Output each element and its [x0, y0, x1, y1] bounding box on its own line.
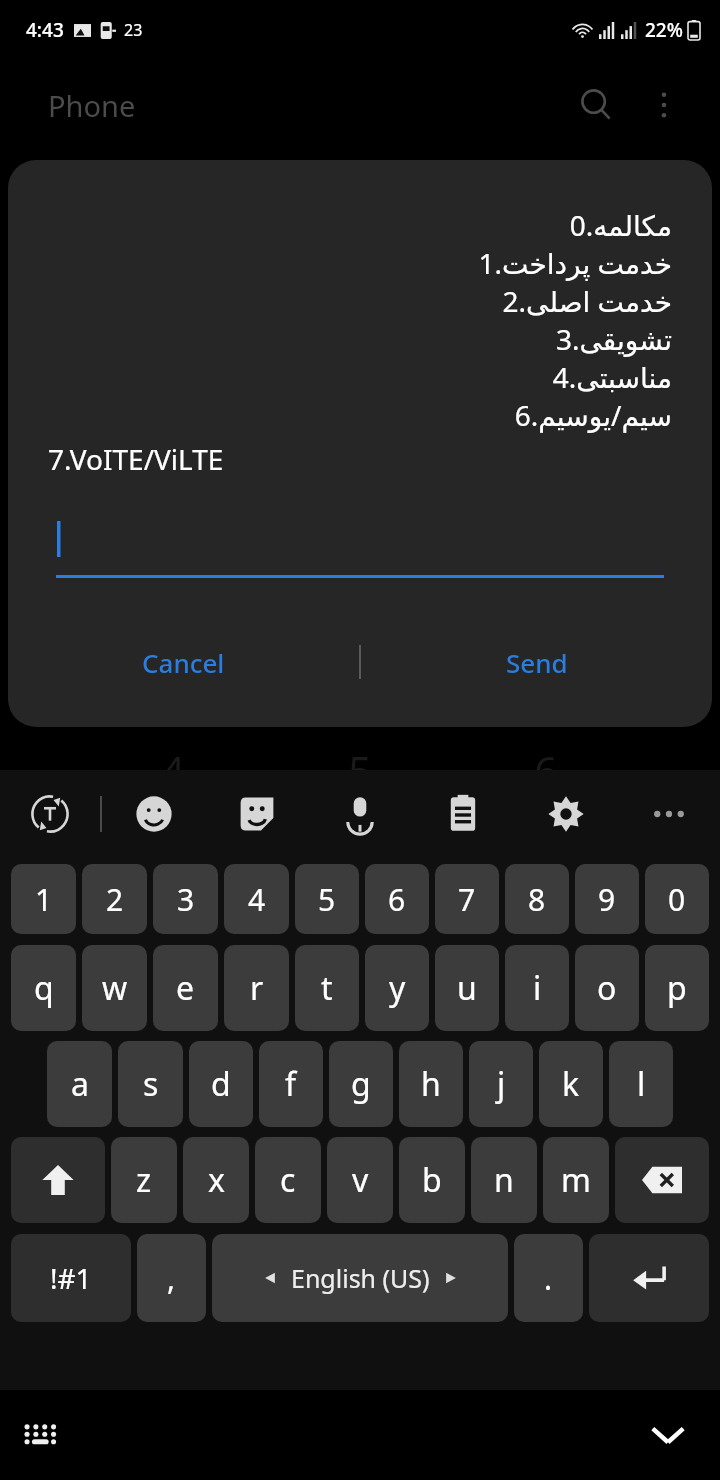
staticText: 6 [388, 879, 406, 920]
button[interactable]: y [365, 945, 429, 1031]
button[interactable]: More options [636, 77, 692, 133]
staticText: m [561, 1158, 591, 1202]
staticText: e [176, 966, 195, 1010]
staticText: 4 [161, 742, 186, 799]
button[interactable]: 8 [505, 864, 569, 934]
button[interactable]: Stickers [205, 770, 308, 858]
staticText: , [167, 1258, 176, 1299]
button[interactable]: !#1 [11, 1234, 131, 1322]
button[interactable]: u [435, 945, 499, 1031]
staticText: y [389, 966, 406, 1010]
staticText: 0 [668, 879, 686, 920]
button[interactable]: a [47, 1041, 112, 1127]
staticText: 3 [177, 879, 195, 920]
staticText: 6.سیم/یوسیم [8, 396, 672, 434]
button[interactable]: x [183, 1137, 249, 1223]
button[interactable]: Backspace [615, 1137, 709, 1223]
staticText: g [351, 1062, 371, 1106]
button[interactable]: 3 [153, 864, 218, 934]
button[interactable]: g [329, 1041, 393, 1127]
staticText: 2 [106, 879, 124, 920]
button[interactable]: Enter [589, 1234, 709, 1322]
staticText: o [597, 966, 617, 1010]
button[interactable]: v [327, 1137, 393, 1223]
staticText: c [280, 1158, 296, 1202]
staticText: u [457, 966, 477, 1010]
button[interactable]: m [543, 1137, 609, 1223]
staticText: 23 [124, 19, 143, 41]
staticText: i [533, 966, 542, 1010]
staticText: Phone [48, 86, 136, 125]
staticText: b [422, 1158, 442, 1202]
button[interactable]: 1 [11, 864, 76, 934]
button[interactable]: k [539, 1041, 603, 1127]
button[interactable]: h [399, 1041, 463, 1127]
staticText: 7 [458, 879, 476, 920]
button[interactable]: Clipboard [411, 770, 514, 858]
button[interactable] [56, 518, 664, 578]
staticText: 8 [528, 879, 546, 920]
staticText: v [352, 1158, 369, 1202]
button[interactable]: Search [568, 77, 624, 133]
staticText: t [321, 966, 333, 1010]
button[interactable]: p [645, 945, 709, 1031]
button[interactable]: q [11, 945, 76, 1031]
button[interactable]: l [609, 1041, 673, 1127]
staticText: 7.VoITE/ViLTE [48, 440, 712, 478]
button[interactable]: . [514, 1234, 583, 1322]
button[interactable]: Cancel [8, 630, 359, 694]
button[interactable]: Translate [0, 770, 100, 858]
button[interactable]: t [295, 945, 359, 1031]
staticText: p [667, 966, 687, 1010]
button[interactable]: z [111, 1137, 177, 1223]
button[interactable]: English (US) [212, 1234, 508, 1322]
staticText: English (US) [291, 1261, 430, 1295]
button[interactable]: n [471, 1137, 537, 1223]
staticText: !#1 [50, 1259, 92, 1297]
button[interactable]: w [82, 945, 147, 1031]
staticText: 22% [645, 17, 683, 43]
button[interactable]: Send [361, 630, 712, 694]
button[interactable]: s [118, 1041, 183, 1127]
button[interactable]: Hide keyboard [638, 1405, 698, 1465]
staticText: x [208, 1158, 225, 1202]
button[interactable]: Voice input [308, 770, 411, 858]
staticText: 6 [534, 742, 559, 799]
button[interactable]: , [137, 1234, 206, 1322]
staticText: n [494, 1158, 514, 1202]
button[interactable]: Settings [514, 770, 617, 858]
staticText: 5 [318, 879, 336, 920]
button[interactable]: 4 [224, 864, 289, 934]
staticText: f [285, 1062, 297, 1106]
staticText: l [637, 1062, 646, 1106]
staticText: 5 [348, 742, 373, 799]
button[interactable]: 9 [575, 864, 639, 934]
button[interactable]: j [469, 1041, 533, 1127]
button[interactable]: i [505, 945, 569, 1031]
staticText: 4.مناسبتی [8, 358, 672, 396]
button[interactable]: 0 [645, 864, 709, 934]
button[interactable]: Emoji [102, 770, 205, 858]
button[interactable]: 5 [295, 864, 359, 934]
button[interactable]: 2 [82, 864, 147, 934]
staticText: d [211, 1062, 231, 1106]
button[interactable]: r [224, 945, 289, 1031]
button[interactable]: 6 [365, 864, 429, 934]
button[interactable]: o [575, 945, 639, 1031]
staticText: 4 [248, 879, 266, 920]
button[interactable]: More [617, 770, 720, 858]
button[interactable]: f [259, 1041, 323, 1127]
button[interactable]: c [255, 1137, 321, 1223]
button[interactable]: 7 [435, 864, 499, 934]
button[interactable]: Switch keyboard [14, 1407, 70, 1463]
staticText: Send [506, 645, 568, 680]
staticText: q [34, 966, 54, 1010]
button[interactable]: e [153, 945, 218, 1031]
button[interactable]: b [399, 1137, 465, 1223]
button[interactable]: Shift [11, 1137, 105, 1223]
staticText: r [250, 966, 264, 1010]
button[interactable]: d [189, 1041, 253, 1127]
staticText: k [562, 1062, 580, 1106]
staticText: 4:43 [26, 17, 64, 43]
staticText: 9 [598, 879, 616, 920]
